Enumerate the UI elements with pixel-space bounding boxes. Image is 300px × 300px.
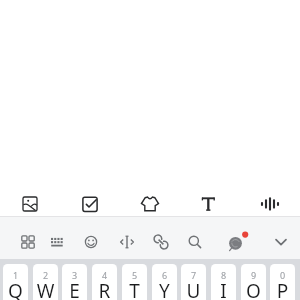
button[interactable]: 1 — [3, 264, 28, 300]
staticText: 6 — [152, 269, 177, 280]
button[interactable] — [60, 189, 120, 219]
button[interactable] — [43, 228, 71, 256]
button[interactable] — [147, 228, 175, 256]
staticText: 1 — [3, 269, 28, 280]
button[interactable]: 3 — [62, 264, 87, 300]
button[interactable]: 7 — [181, 264, 206, 300]
staticText: 5 — [122, 269, 147, 280]
staticText: R — [92, 278, 117, 300]
button[interactable] — [240, 189, 300, 219]
button[interactable] — [77, 228, 105, 256]
button[interactable] — [14, 228, 42, 256]
button[interactable] — [113, 228, 141, 256]
staticText: 4 — [92, 269, 117, 280]
staticText: I — [211, 278, 236, 300]
staticText: T — [122, 278, 147, 300]
staticText: U — [181, 278, 206, 300]
button[interactable] — [120, 189, 180, 219]
staticText: P — [270, 278, 295, 300]
staticText: Y — [152, 278, 177, 300]
button[interactable]: 9 — [241, 264, 266, 300]
staticText: Q — [3, 278, 28, 300]
staticText: 9 — [241, 269, 266, 280]
staticText: 7 — [181, 269, 206, 280]
button[interactable] — [181, 228, 209, 256]
button[interactable]: 4 — [92, 264, 117, 300]
staticText: O — [241, 278, 266, 300]
staticText: 8 — [211, 269, 236, 280]
button[interactable]: 8 — [211, 264, 236, 300]
button[interactable]: 2 — [33, 264, 58, 300]
button[interactable] — [180, 189, 240, 219]
button[interactable] — [0, 189, 60, 219]
button[interactable]: 5 — [122, 264, 147, 300]
staticText: 0 — [270, 269, 295, 280]
button[interactable]: 6 — [152, 264, 177, 300]
button[interactable] — [223, 228, 251, 256]
button[interactable] — [267, 228, 295, 256]
staticText: 3 — [62, 269, 87, 280]
staticText: 2 — [33, 269, 58, 280]
button[interactable]: 0 — [270, 264, 295, 300]
staticText: W — [33, 278, 58, 300]
staticText: E — [62, 278, 87, 300]
